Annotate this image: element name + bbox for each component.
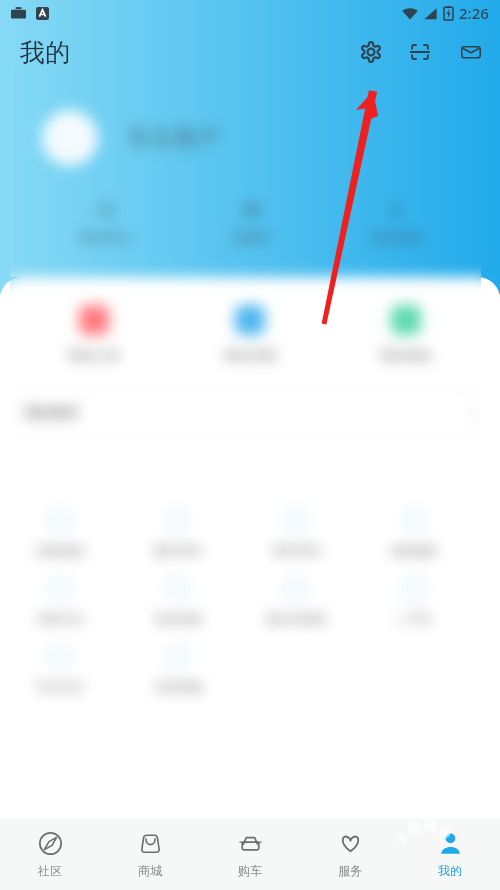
staticText: 12 <box>95 198 115 221</box>
button[interactable]: 二手车 <box>355 574 473 642</box>
button[interactable]: Messages <box>458 39 484 65</box>
button[interactable]: 38 <box>178 198 323 245</box>
staticText: 购车 <box>238 863 262 878</box>
button[interactable]: Scan <box>407 39 433 65</box>
button[interactable]: 附近经销商 <box>237 574 355 642</box>
button[interactable]: 我的 <box>400 832 500 878</box>
staticText: 我的 <box>438 863 462 878</box>
staticText: 服务 <box>338 863 362 878</box>
staticText: 我的车辆 <box>224 347 276 363</box>
staticText: 年检代办 <box>36 611 84 626</box>
button[interactable]: 6 <box>323 198 468 245</box>
button[interactable] <box>42 110 98 166</box>
button[interactable]: 违章查询 <box>237 506 355 574</box>
staticText: 社区 <box>38 863 62 878</box>
staticText: 商城 <box>138 863 162 878</box>
staticText: 我的服务 <box>24 404 80 422</box>
button[interactable]: 预约保养 <box>119 506 237 574</box>
button[interactable]: 我的车辆 <box>172 305 328 363</box>
staticText: 附近经销商 <box>266 611 326 626</box>
button[interactable]: 购车 <box>200 832 300 878</box>
button[interactable]: 加油优惠 <box>119 574 237 642</box>
button[interactable]: 年检代办 <box>1 574 119 642</box>
button[interactable]: 道路救援 <box>1 506 119 574</box>
button[interactable]: 商城 <box>100 832 200 878</box>
staticText: 我的 <box>20 37 70 68</box>
staticText: 在线客服 <box>154 679 202 694</box>
staticText: 道路救援 <box>36 543 84 558</box>
button[interactable]: Settings <box>358 39 384 65</box>
staticText: 6 <box>391 198 401 221</box>
button[interactable]: 服务 <box>300 832 400 878</box>
staticText: 我的钱包 <box>380 347 432 363</box>
button[interactable]: 社区 <box>0 832 100 878</box>
staticText: 二手车 <box>396 611 432 626</box>
staticText: 38 <box>241 198 261 221</box>
button[interactable]: 我的钱包 <box>328 305 484 363</box>
staticText: 车主用户 <box>127 124 219 153</box>
staticText: 2:26 <box>459 3 489 23</box>
staticText: 车主社区 <box>36 679 84 694</box>
button[interactable]: 我的服务 <box>0 390 500 436</box>
button[interactable]: 12 <box>32 198 178 245</box>
staticText: 我的订单 <box>68 347 120 363</box>
staticText: 违章查询 <box>272 543 320 558</box>
staticText: 预约保养 <box>154 543 202 558</box>
staticText: 加油优惠 <box>154 611 202 626</box>
staticText: 我的积分 <box>79 229 131 245</box>
staticText: 保险服务 <box>390 543 438 558</box>
staticText: 我的收藏 <box>370 229 422 245</box>
button[interactable]: 我的订单 <box>16 305 172 363</box>
button[interactable]: 在线客服 <box>119 642 237 710</box>
button[interactable]: 车主社区 <box>1 642 119 710</box>
staticText: 优惠券 <box>231 229 270 245</box>
button[interactable]: 保险服务 <box>355 506 473 574</box>
